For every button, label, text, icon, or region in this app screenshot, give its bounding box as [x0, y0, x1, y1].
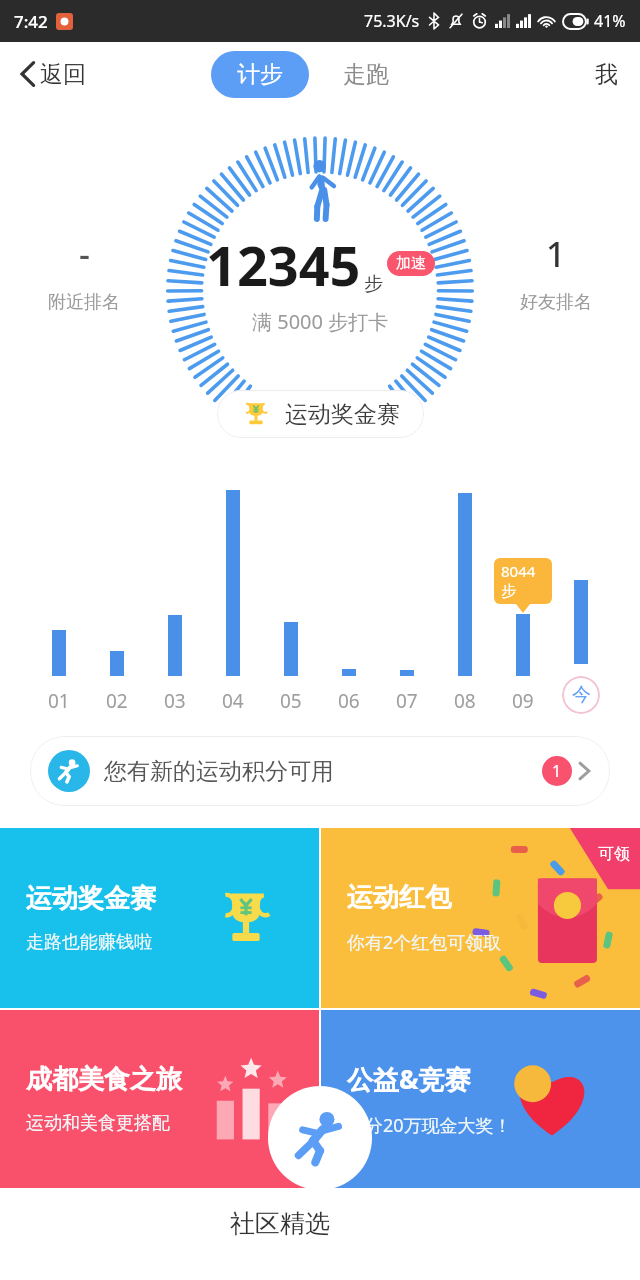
button[interactable]: 06 — [320, 490, 378, 714]
staticText: 返回 — [40, 60, 86, 89]
button[interactable]: 04 — [204, 490, 262, 714]
staticText: 7:42 — [14, 10, 48, 33]
staticText: 05 — [280, 688, 302, 714]
staticText: 附近排名 — [48, 291, 120, 314]
button[interactable]: 加速 — [387, 251, 435, 276]
staticText: 您有新的运动积分可用 — [104, 757, 334, 786]
staticText: 成都美食之旅 — [26, 1063, 182, 1096]
staticText: 03 — [164, 688, 186, 714]
button[interactable]: - — [40, 223, 128, 322]
staticText: 走路也能赚钱啦 — [26, 931, 152, 954]
button[interactable]: 计步 — [211, 51, 309, 98]
staticText: 01 — [48, 688, 70, 714]
staticText: 步 — [364, 272, 383, 296]
button[interactable]: 走跑 — [333, 51, 399, 98]
button[interactable]: 1 — [512, 223, 600, 322]
staticText: 08 — [454, 688, 476, 714]
staticText: 07 — [396, 688, 418, 714]
button[interactable]: 08 — [436, 490, 494, 714]
staticText: 运动奖金赛 — [26, 882, 156, 915]
staticText: 06 — [338, 688, 360, 714]
button[interactable]: 成都美食之旅 — [0, 1010, 319, 1188]
button[interactable]: 公益&竞赛 — [321, 1010, 640, 1188]
staticText: 加速 — [396, 254, 426, 273]
staticText: 09 — [512, 688, 534, 714]
button[interactable]: 运动奖金赛 — [0, 828, 319, 1008]
button[interactable]: 开始跑步 — [268, 1086, 372, 1190]
staticText: 运动红包 — [347, 881, 451, 914]
button[interactable]: 05 — [262, 490, 320, 714]
staticText: 04 — [222, 688, 244, 714]
staticText: 02 — [106, 688, 128, 714]
staticText: 75.3K/s — [364, 10, 420, 32]
button[interactable]: 可领 — [321, 828, 640, 1008]
staticText: 41% — [594, 10, 626, 32]
staticText: 今 — [572, 683, 591, 707]
button[interactable]: 返回 — [14, 53, 90, 95]
button[interactable]: 今 — [552, 478, 610, 714]
staticText: 走跑 — [343, 60, 389, 89]
staticText: 1 — [552, 760, 562, 782]
button[interactable]: 02 — [88, 490, 146, 714]
staticText: 8044步 — [501, 561, 545, 601]
staticText: 瓜分20万现金大奖！ — [347, 1113, 512, 1138]
button[interactable]: 运动奖金赛 — [217, 390, 424, 438]
staticText: 社区精选 — [230, 1208, 330, 1239]
staticText: 12345 — [206, 228, 361, 302]
staticText: 好友排名 — [520, 291, 592, 314]
staticText: 计步 — [237, 60, 283, 89]
button[interactable]: 8044步 — [494, 490, 552, 714]
button[interactable]: 03 — [146, 490, 204, 714]
staticText: 你有2个红包可领取 — [347, 930, 502, 955]
button[interactable]: 01 — [30, 490, 88, 714]
staticText: - — [79, 231, 90, 277]
staticText: 运动奖金赛 — [285, 400, 400, 429]
button[interactable]: 您有新的运动积分可用 — [30, 736, 610, 806]
staticText: 1 — [546, 231, 566, 277]
staticText: 运动和美食更搭配 — [26, 1112, 170, 1135]
staticText: 我 — [595, 60, 618, 89]
staticText: 满 5000 步打卡 — [252, 308, 389, 335]
button[interactable]: 我 — [587, 54, 626, 95]
button[interactable]: 07 — [378, 490, 436, 714]
staticText: 可领 — [598, 844, 630, 864]
staticText: 公益&竞赛 — [347, 1061, 471, 1097]
